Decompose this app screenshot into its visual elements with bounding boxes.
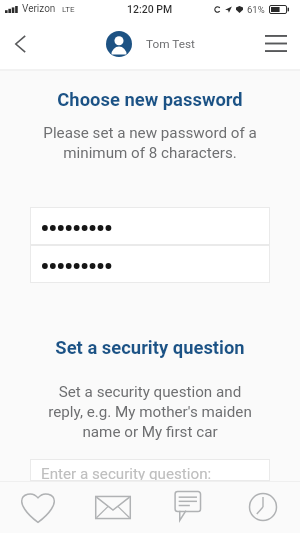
staticText: 12:20 PM — [127, 3, 173, 15]
button[interactable]: Back — [0, 18, 41, 69]
staticText: Please set a new password of a minimum o… — [0, 124, 300, 161]
button[interactable]: Menu — [252, 18, 300, 69]
staticText: Enter a security question: — [41, 465, 212, 483]
staticText: Tom Test — [146, 37, 195, 51]
button[interactable] — [30, 245, 270, 283]
staticText: Set a security question — [0, 337, 300, 359]
button[interactable]: History — [225, 482, 300, 533]
staticText: Verizon — [22, 3, 56, 15]
button[interactable]: Chat — [150, 482, 225, 533]
button[interactable] — [30, 207, 270, 245]
staticText: LTE — [62, 5, 75, 14]
staticText: Set a security question and reply, e.g. … — [0, 383, 300, 440]
button[interactable]: Tom Test — [106, 31, 195, 57]
button[interactable]: Enter a security question: — [30, 459, 270, 481]
staticText: Choose new password — [0, 89, 300, 111]
staticText: 61% — [247, 4, 265, 15]
button[interactable]: Messages — [75, 482, 150, 533]
button[interactable]: Favorites — [0, 482, 75, 533]
